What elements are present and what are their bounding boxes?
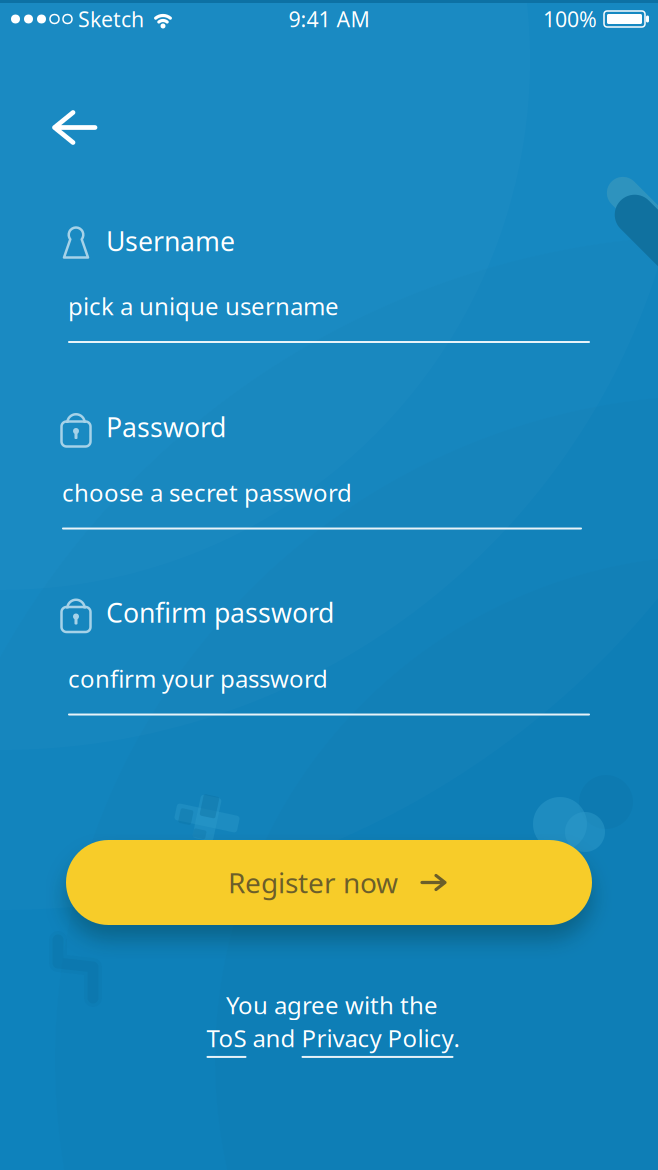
staticText: Register now (228, 864, 398, 901)
staticText: Privacy Policy (301, 1022, 453, 1054)
staticText: pick a unique username (68, 290, 339, 322)
staticText: confirm your password (68, 663, 328, 694)
button[interactable]: ToS (206, 1022, 246, 1058)
button[interactable]: pick a unique username (68, 290, 590, 346)
staticText: ToS (206, 1022, 246, 1054)
button[interactable]: choose a secret password (62, 476, 582, 532)
staticText: and (246, 1022, 301, 1054)
staticText: 9:41 AM (288, 5, 369, 33)
staticText: Password (106, 409, 226, 445)
button[interactable]: Register now (66, 840, 592, 925)
button[interactable]: Back (38, 97, 108, 157)
staticText: Sketch (78, 5, 144, 33)
staticText: You agree with the (226, 989, 438, 1021)
button[interactable]: Privacy Policy (301, 1022, 453, 1058)
staticText: Username (106, 223, 235, 259)
button[interactable]: confirm your password (68, 662, 590, 718)
staticText: Confirm password (106, 595, 334, 630)
staticText: 100% (543, 5, 597, 33)
staticText: choose a secret password (62, 477, 352, 508)
staticText: . (453, 1022, 459, 1054)
